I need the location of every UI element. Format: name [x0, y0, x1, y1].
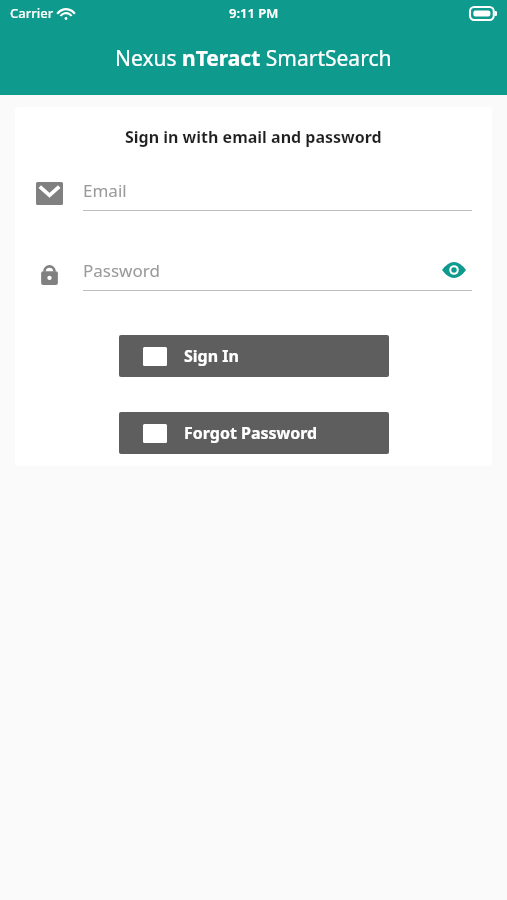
staticText: 9:11 PM [229, 4, 279, 22]
button[interactable]: Password [15, 250, 492, 312]
other: Email [36, 182, 63, 205]
button[interactable]: Show password [436, 252, 472, 288]
button[interactable]: Forgot Password [119, 412, 389, 454]
staticText: Carrier [10, 4, 54, 22]
staticText: Sign in with email and password [125, 126, 382, 148]
staticText: Nexus nTeract SmartSearch [115, 44, 392, 73]
staticText: Email [83, 179, 472, 202]
button[interactable]: Email [15, 170, 492, 232]
staticText: Forgot Password [184, 422, 318, 444]
staticText: Sign In [184, 345, 239, 367]
other: Password [36, 262, 63, 285]
staticText: Password [83, 259, 436, 282]
button[interactable]: Sign In [119, 335, 389, 377]
